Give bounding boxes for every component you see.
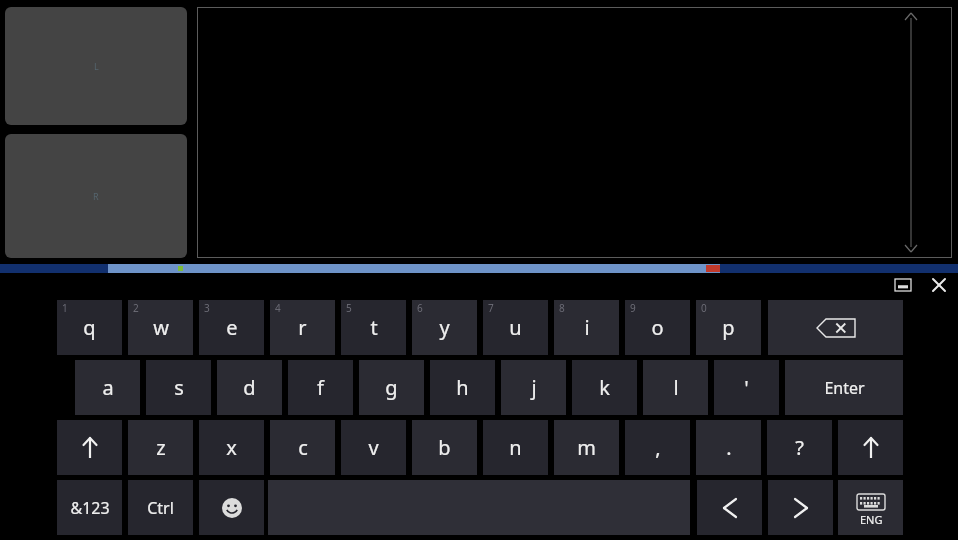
staticText: Ctrl <box>147 497 174 519</box>
button[interactable]: l <box>643 360 708 415</box>
staticText: 6 <box>417 301 423 315</box>
staticText: 2 <box>133 301 139 315</box>
staticText: ? <box>795 434 804 461</box>
staticText: Enter <box>824 377 865 399</box>
staticText: . <box>726 434 732 461</box>
staticText: L <box>94 60 99 72</box>
staticText: 3 <box>204 301 210 315</box>
staticText: R <box>93 190 99 202</box>
button[interactable]: Right <box>768 480 833 535</box>
button[interactable]: k <box>572 360 637 415</box>
staticText: 8 <box>559 301 565 315</box>
staticText: g <box>385 374 398 401</box>
staticText: z <box>156 434 166 461</box>
button[interactable]: , <box>625 420 690 475</box>
staticText: o <box>651 314 664 341</box>
staticText: t <box>370 314 378 341</box>
staticText: 5 <box>346 301 352 315</box>
staticText: ENG <box>860 512 883 527</box>
button[interactable]: b <box>412 420 477 475</box>
button[interactable]: f <box>288 360 353 415</box>
staticText: 9 <box>630 301 636 315</box>
button[interactable]: c <box>270 420 335 475</box>
staticText: m <box>577 434 596 461</box>
staticText: u <box>509 314 522 341</box>
button[interactable]: x <box>199 420 264 475</box>
button[interactable]: d <box>217 360 282 415</box>
staticText: n <box>509 434 522 461</box>
button[interactable]: 8 <box>554 300 619 355</box>
staticText: r <box>298 314 307 341</box>
staticText: &123 <box>70 497 110 519</box>
button[interactable]: Ctrl <box>128 480 193 535</box>
button[interactable]: j <box>501 360 566 415</box>
staticText: 4 <box>275 301 281 315</box>
button[interactable]: v <box>341 420 406 475</box>
button[interactable]: s <box>146 360 211 415</box>
button[interactable]: 0 <box>696 300 761 355</box>
staticText: h <box>456 374 469 401</box>
button[interactable]: . <box>696 420 761 475</box>
button[interactable]: ? <box>767 420 832 475</box>
staticText: 0 <box>701 301 707 315</box>
staticText: v <box>368 434 379 461</box>
button[interactable]: h <box>430 360 495 415</box>
button[interactable]: g <box>359 360 424 415</box>
button[interactable]: Emoji <box>199 480 264 535</box>
button[interactable]: Shift <box>57 420 122 475</box>
staticText: l <box>673 374 679 401</box>
button[interactable]: Backspace <box>768 300 903 355</box>
staticText: i <box>584 314 590 341</box>
button[interactable]: Enter <box>785 360 903 415</box>
button[interactable]: &123 <box>57 480 122 535</box>
button[interactable]: Minimize <box>888 274 918 296</box>
button[interactable]: 3 <box>199 300 264 355</box>
staticText: b <box>438 434 451 461</box>
button[interactable]: m <box>554 420 619 475</box>
button[interactable]: z <box>128 420 193 475</box>
staticText: w <box>153 314 169 341</box>
button[interactable]: Change language <box>838 480 903 535</box>
button[interactable]: 5 <box>341 300 406 355</box>
staticText: y <box>439 314 450 341</box>
button[interactable]: Shift <box>838 420 903 475</box>
button[interactable]: n <box>483 420 548 475</box>
staticText: q <box>83 314 96 341</box>
staticText: 1 <box>62 301 68 315</box>
staticText: ' <box>744 374 749 401</box>
staticText: p <box>722 314 735 341</box>
staticText: d <box>243 374 256 401</box>
staticText: k <box>599 374 610 401</box>
button[interactable] <box>197 7 952 258</box>
button[interactable]: 6 <box>412 300 477 355</box>
staticText: a <box>102 374 114 401</box>
button[interactable]: 9 <box>625 300 690 355</box>
button[interactable]: a <box>75 360 140 415</box>
staticText: , <box>655 434 661 461</box>
button[interactable]: Close <box>925 272 953 298</box>
button[interactable]: 2 <box>128 300 193 355</box>
staticText: f <box>317 374 324 401</box>
staticText: c <box>298 434 308 461</box>
button[interactable]: 4 <box>270 300 335 355</box>
staticText: s <box>174 374 184 401</box>
staticText: x <box>226 434 237 461</box>
staticText: 7 <box>488 301 494 315</box>
staticText: e <box>226 314 238 341</box>
button[interactable]: 1 <box>57 300 122 355</box>
button[interactable]: 7 <box>483 300 548 355</box>
staticText: j <box>531 374 537 401</box>
button[interactable]: ' <box>714 360 779 415</box>
button[interactable]: Left <box>697 480 762 535</box>
